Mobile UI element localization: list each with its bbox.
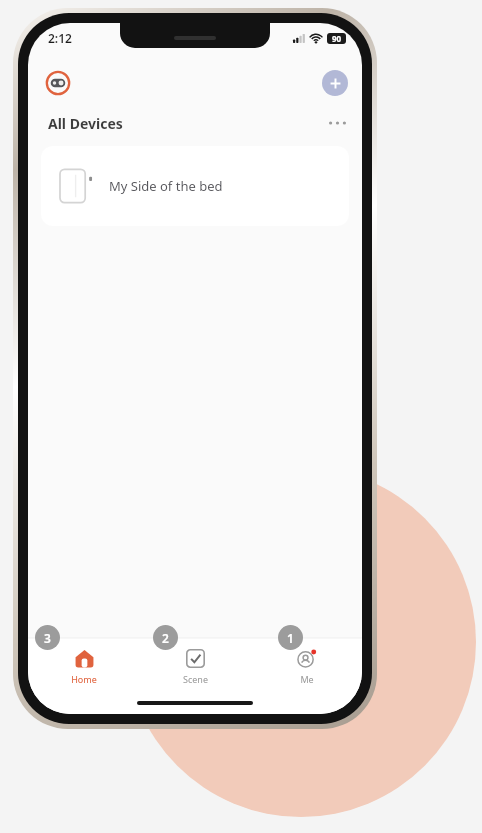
staticText: 2 xyxy=(162,630,169,646)
button[interactable]: Home xyxy=(28,638,140,694)
staticText: All Devices xyxy=(48,114,123,133)
button[interactable]: Current home xyxy=(41,66,75,100)
button[interactable]: Me xyxy=(251,638,362,694)
button[interactable]: More options xyxy=(322,111,352,135)
button[interactable]: Add device xyxy=(322,70,348,96)
staticText: 3 xyxy=(44,630,51,646)
staticText: My Side of the bed xyxy=(109,177,223,195)
button[interactable]: My Side of the bed xyxy=(41,146,349,226)
staticText: 1 xyxy=(287,630,294,646)
staticText: 2:12 xyxy=(48,30,72,46)
staticText: Home xyxy=(71,673,97,685)
staticText: Scene xyxy=(183,673,208,685)
button[interactable]: Scene xyxy=(140,638,251,694)
staticText: 90 xyxy=(332,33,342,44)
staticText: Me xyxy=(300,673,314,685)
